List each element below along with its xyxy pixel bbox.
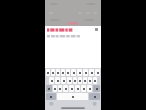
button[interactable]: Key bbox=[46, 69, 50, 76]
button[interactable]: Key bbox=[77, 69, 82, 76]
button[interactable]: Key bbox=[51, 69, 55, 76]
button[interactable]: Key bbox=[53, 85, 57, 92]
button[interactable]: Key bbox=[83, 77, 87, 84]
button[interactable]: Key bbox=[88, 77, 92, 84]
button[interactable]: Key bbox=[66, 69, 70, 76]
button[interactable]: Key bbox=[67, 77, 72, 84]
button[interactable]: Key bbox=[73, 77, 77, 84]
button[interactable]: Backspace bbox=[93, 85, 100, 92]
button[interactable]: Shift bbox=[46, 85, 52, 92]
button[interactable]: Close bbox=[94, 27, 99, 32]
button[interactable] bbox=[47, 27, 94, 33]
button[interactable]: Key bbox=[81, 85, 86, 92]
button[interactable]: Key bbox=[78, 77, 82, 84]
button[interactable]: Key bbox=[83, 69, 88, 76]
button[interactable]: Key bbox=[89, 69, 94, 76]
button[interactable]: Key bbox=[61, 69, 65, 76]
button[interactable]: Return bbox=[89, 93, 100, 100]
button[interactable]: Key bbox=[69, 85, 74, 92]
button[interactable]: Key bbox=[87, 85, 92, 92]
button[interactable]: Key bbox=[93, 77, 97, 84]
button[interactable]: Numbers bbox=[46, 93, 56, 100]
button[interactable]: Key bbox=[71, 69, 76, 76]
button[interactable] bbox=[47, 33, 101, 40]
button[interactable]: Key bbox=[61, 77, 66, 84]
button[interactable]: Key bbox=[55, 77, 60, 84]
button[interactable]: Key bbox=[95, 69, 100, 76]
button[interactable]: Key bbox=[75, 85, 80, 92]
button[interactable]: Space bbox=[57, 93, 88, 100]
button[interactable]: Key bbox=[58, 85, 62, 92]
button[interactable]: Key bbox=[49, 77, 54, 84]
button[interactable]: Key bbox=[56, 69, 60, 76]
button[interactable]: Key bbox=[63, 85, 68, 92]
